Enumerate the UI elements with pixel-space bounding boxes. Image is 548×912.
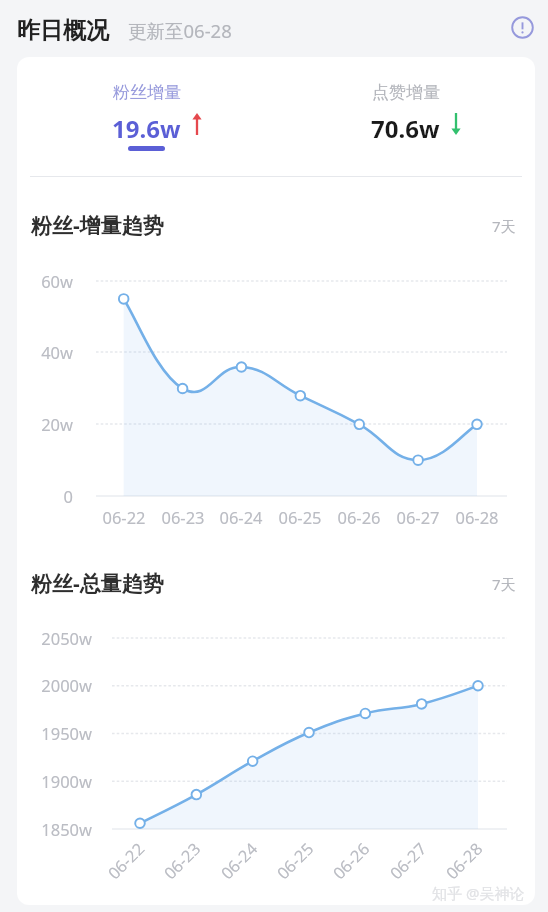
staticText: 06-26 bbox=[327, 837, 371, 881]
staticText: 06-23 bbox=[155, 506, 211, 528]
staticText: 点赞增量 bbox=[372, 82, 440, 103]
staticText: 06-23 bbox=[158, 837, 202, 881]
staticText: 06-28 bbox=[449, 506, 505, 528]
staticText: 1900w bbox=[0, 770, 92, 792]
staticText: 06-24 bbox=[215, 837, 259, 881]
staticText: 06-24 bbox=[213, 506, 269, 528]
staticText: 06-22 bbox=[102, 837, 146, 881]
staticText: 7天 bbox=[492, 216, 516, 236]
staticText: 60w bbox=[0, 270, 73, 292]
staticText: 粉丝-增量趋势 bbox=[31, 211, 164, 240]
staticText: 70.6w bbox=[371, 112, 440, 145]
staticText: 1850w bbox=[0, 818, 92, 840]
staticText: 06-27 bbox=[384, 837, 428, 881]
staticText: 20w bbox=[0, 413, 73, 435]
staticText: 0 bbox=[0, 485, 73, 507]
staticText: 昨日概况 bbox=[17, 16, 109, 45]
staticText: 19.6w bbox=[112, 112, 181, 145]
staticText: 06-22 bbox=[96, 506, 152, 528]
staticText: 06-25 bbox=[271, 837, 315, 881]
staticText: 2000w bbox=[0, 674, 92, 696]
staticText: 06-28 bbox=[440, 837, 484, 881]
staticText: 粉丝-总量趋势 bbox=[31, 569, 164, 598]
staticText: 06-26 bbox=[331, 506, 387, 528]
button[interactable]: 点赞增量 bbox=[276, 57, 535, 145]
button[interactable]: Info bbox=[505, 10, 539, 44]
staticText: 知乎 @吴神论 bbox=[432, 883, 525, 903]
staticText: 06-27 bbox=[390, 506, 446, 528]
staticText: 40w bbox=[0, 341, 73, 363]
staticText: 粉丝增量 bbox=[113, 82, 181, 103]
staticText: 06-25 bbox=[272, 506, 328, 528]
staticText: 2050w bbox=[0, 627, 92, 649]
staticText: 1950w bbox=[0, 722, 92, 744]
button[interactable]: 粉丝增量 bbox=[17, 57, 276, 151]
staticText: 7天 bbox=[492, 574, 516, 594]
staticText: 更新至06-28 bbox=[128, 18, 232, 43]
